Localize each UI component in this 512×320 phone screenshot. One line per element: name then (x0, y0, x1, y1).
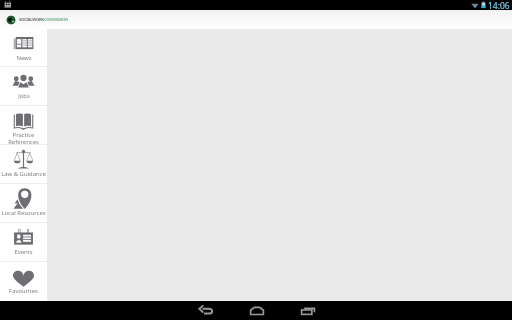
button[interactable]: News (0, 29, 47, 67)
staticText: SOCIALWORK (19, 17, 44, 23)
staticText: COMPANION (44, 17, 69, 23)
staticText: 14:06 (488, 0, 510, 10)
staticText: Jobs (18, 92, 30, 100)
button[interactable]: Home (240, 301, 273, 320)
staticText: Local Resources (1, 209, 46, 217)
button[interactable]: Back (189, 301, 222, 320)
staticText: Practice References (8, 131, 39, 145)
button[interactable]: Recent apps (291, 301, 324, 320)
staticText: Favourites (9, 287, 38, 295)
staticText: Events (14, 248, 33, 256)
button[interactable]: Law & Guidance (0, 145, 47, 184)
button[interactable]: Local Resources (0, 184, 47, 223)
button[interactable]: Practice References (0, 106, 47, 145)
button[interactable]: Jobs (0, 67, 47, 106)
button[interactable]: Favourites (0, 262, 47, 301)
button[interactable]: Events (0, 223, 47, 262)
staticText: News (16, 54, 32, 62)
staticText: Law & Guidance (1, 170, 46, 178)
